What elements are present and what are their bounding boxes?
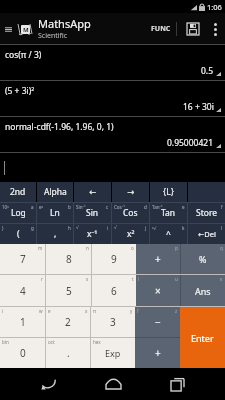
staticText: 2 bbox=[65, 315, 71, 329]
staticText: , bbox=[54, 228, 57, 240]
button[interactable]: p bbox=[136, 244, 180, 274]
staticText: × bbox=[155, 284, 161, 298]
button[interactable]: bin bbox=[0, 338, 45, 368]
staticText: cos(π / 3) bbox=[5, 49, 42, 61]
button[interactable]: l bbox=[136, 275, 180, 306]
staticText: Alpha bbox=[44, 186, 67, 198]
staticText: ˣ√ bbox=[152, 225, 157, 231]
button[interactable]: f bbox=[188, 203, 225, 223]
button[interactable]: Cos⁻¹ bbox=[112, 203, 149, 223]
staticText: c bbox=[106, 204, 109, 210]
staticText: ( bbox=[17, 228, 20, 240]
staticText: MathsApp bbox=[38, 16, 91, 31]
button[interactable]: i bbox=[0, 307, 45, 337]
staticText: 1:06 bbox=[207, 2, 222, 12]
staticText: y bbox=[130, 308, 133, 314]
button[interactable]: √ bbox=[112, 224, 149, 244]
staticText: hex bbox=[93, 339, 101, 345]
button[interactable]: s bbox=[46, 275, 91, 306]
button[interactable]: ← bbox=[74, 182, 111, 202]
button[interactable]: 2nd bbox=[0, 182, 36, 202]
button[interactable]: Enter bbox=[180, 307, 225, 368]
button[interactable]: normal-cdf(-1.96, 1.96, 0, 1) bbox=[0, 116, 225, 152]
staticText: x bbox=[85, 308, 88, 314]
staticText: 2nd bbox=[10, 186, 26, 198]
button[interactable]: l bbox=[188, 224, 225, 244]
staticText: h bbox=[68, 225, 71, 231]
button[interactable]: Sin⁻¹ bbox=[74, 203, 111, 223]
button[interactable]: Alpha bbox=[37, 182, 73, 202]
button[interactable]: t bbox=[92, 275, 136, 306]
staticText: i bbox=[2, 308, 4, 314]
staticText: m bbox=[38, 245, 43, 251]
staticText: Ln bbox=[50, 207, 60, 219]
button[interactable]: 10ˣ bbox=[0, 203, 36, 223]
button[interactable]: h bbox=[37, 224, 73, 244]
button[interactable]: π bbox=[91, 307, 135, 337]
staticText: ^ bbox=[166, 228, 171, 240]
staticText: i bbox=[107, 225, 109, 231]
button[interactable]: + bbox=[135, 338, 180, 368]
staticText: Sin bbox=[86, 207, 99, 219]
staticText: w bbox=[39, 308, 43, 314]
staticText: e bbox=[182, 204, 185, 210]
staticText: p bbox=[175, 245, 178, 251]
staticText: bin bbox=[2, 339, 9, 345]
staticText: (5 + 3i)² bbox=[5, 85, 35, 97]
staticText: Store bbox=[196, 207, 218, 219]
staticText: 7 bbox=[20, 252, 26, 266]
staticText: o bbox=[131, 245, 134, 251]
staticText: Exp bbox=[105, 347, 121, 359]
staticText: → bbox=[127, 187, 135, 197]
button[interactable]: Tan⁻¹ bbox=[150, 203, 187, 223]
staticText: + bbox=[155, 252, 161, 266]
button[interactable]: Save bbox=[183, 19, 203, 39]
staticText: Scientific bbox=[38, 31, 68, 41]
button[interactable]: {L} bbox=[150, 182, 187, 202]
button[interactable]: ˣ√ bbox=[150, 224, 187, 244]
staticText: oct bbox=[48, 339, 55, 345]
button[interactable]: FUNC bbox=[151, 17, 171, 41]
button[interactable]: oct bbox=[46, 338, 90, 368]
staticText: 6 bbox=[111, 284, 117, 298]
staticText: 1 bbox=[20, 315, 26, 329]
button[interactable]: m bbox=[0, 244, 45, 274]
staticText: f bbox=[221, 204, 223, 210]
staticText: v bbox=[220, 276, 223, 282]
staticText: Cos bbox=[123, 207, 138, 219]
button[interactable]: Back bbox=[31, 369, 65, 399]
button[interactable]: hex bbox=[91, 338, 135, 368]
staticText: M bbox=[23, 26, 29, 34]
button[interactable]: Navigation drawer bbox=[2, 19, 14, 39]
button[interactable]: q bbox=[181, 244, 225, 274]
staticText: 4 bbox=[20, 284, 26, 298]
button[interactable]: cos(π / 3) bbox=[0, 44, 225, 80]
button[interactable]: e bbox=[46, 307, 90, 337]
button[interactable]: r bbox=[0, 275, 45, 306]
staticText: 0 bbox=[20, 346, 26, 360]
button[interactable]: n bbox=[46, 244, 91, 274]
staticText: eˣ bbox=[39, 204, 44, 210]
staticText: √ bbox=[114, 225, 117, 230]
staticText: Γ bbox=[137, 308, 140, 314]
button[interactable]: Γ bbox=[135, 307, 180, 337]
button[interactable]: v bbox=[181, 275, 225, 306]
staticText: 3 bbox=[110, 315, 116, 329]
button[interactable]: Recent apps bbox=[160, 369, 194, 399]
button[interactable]: eˣ bbox=[37, 203, 73, 223]
staticText: 9 bbox=[111, 252, 117, 266]
button[interactable]: ) bbox=[0, 224, 36, 244]
button[interactable]: √ bbox=[74, 224, 111, 244]
button[interactable]: Home bbox=[96, 369, 130, 399]
button[interactable]: (5 + 3i)² bbox=[0, 80, 225, 116]
staticText: Tan bbox=[161, 207, 176, 219]
staticText: Sin⁻¹ bbox=[76, 204, 86, 210]
button[interactable]: → bbox=[112, 182, 149, 202]
button[interactable] bbox=[0, 153, 225, 182]
staticText: n bbox=[86, 245, 89, 251]
button[interactable]: More options bbox=[207, 17, 223, 41]
staticText: ) bbox=[2, 225, 4, 231]
staticText: Enter bbox=[191, 332, 214, 344]
button[interactable]: o bbox=[92, 244, 136, 274]
